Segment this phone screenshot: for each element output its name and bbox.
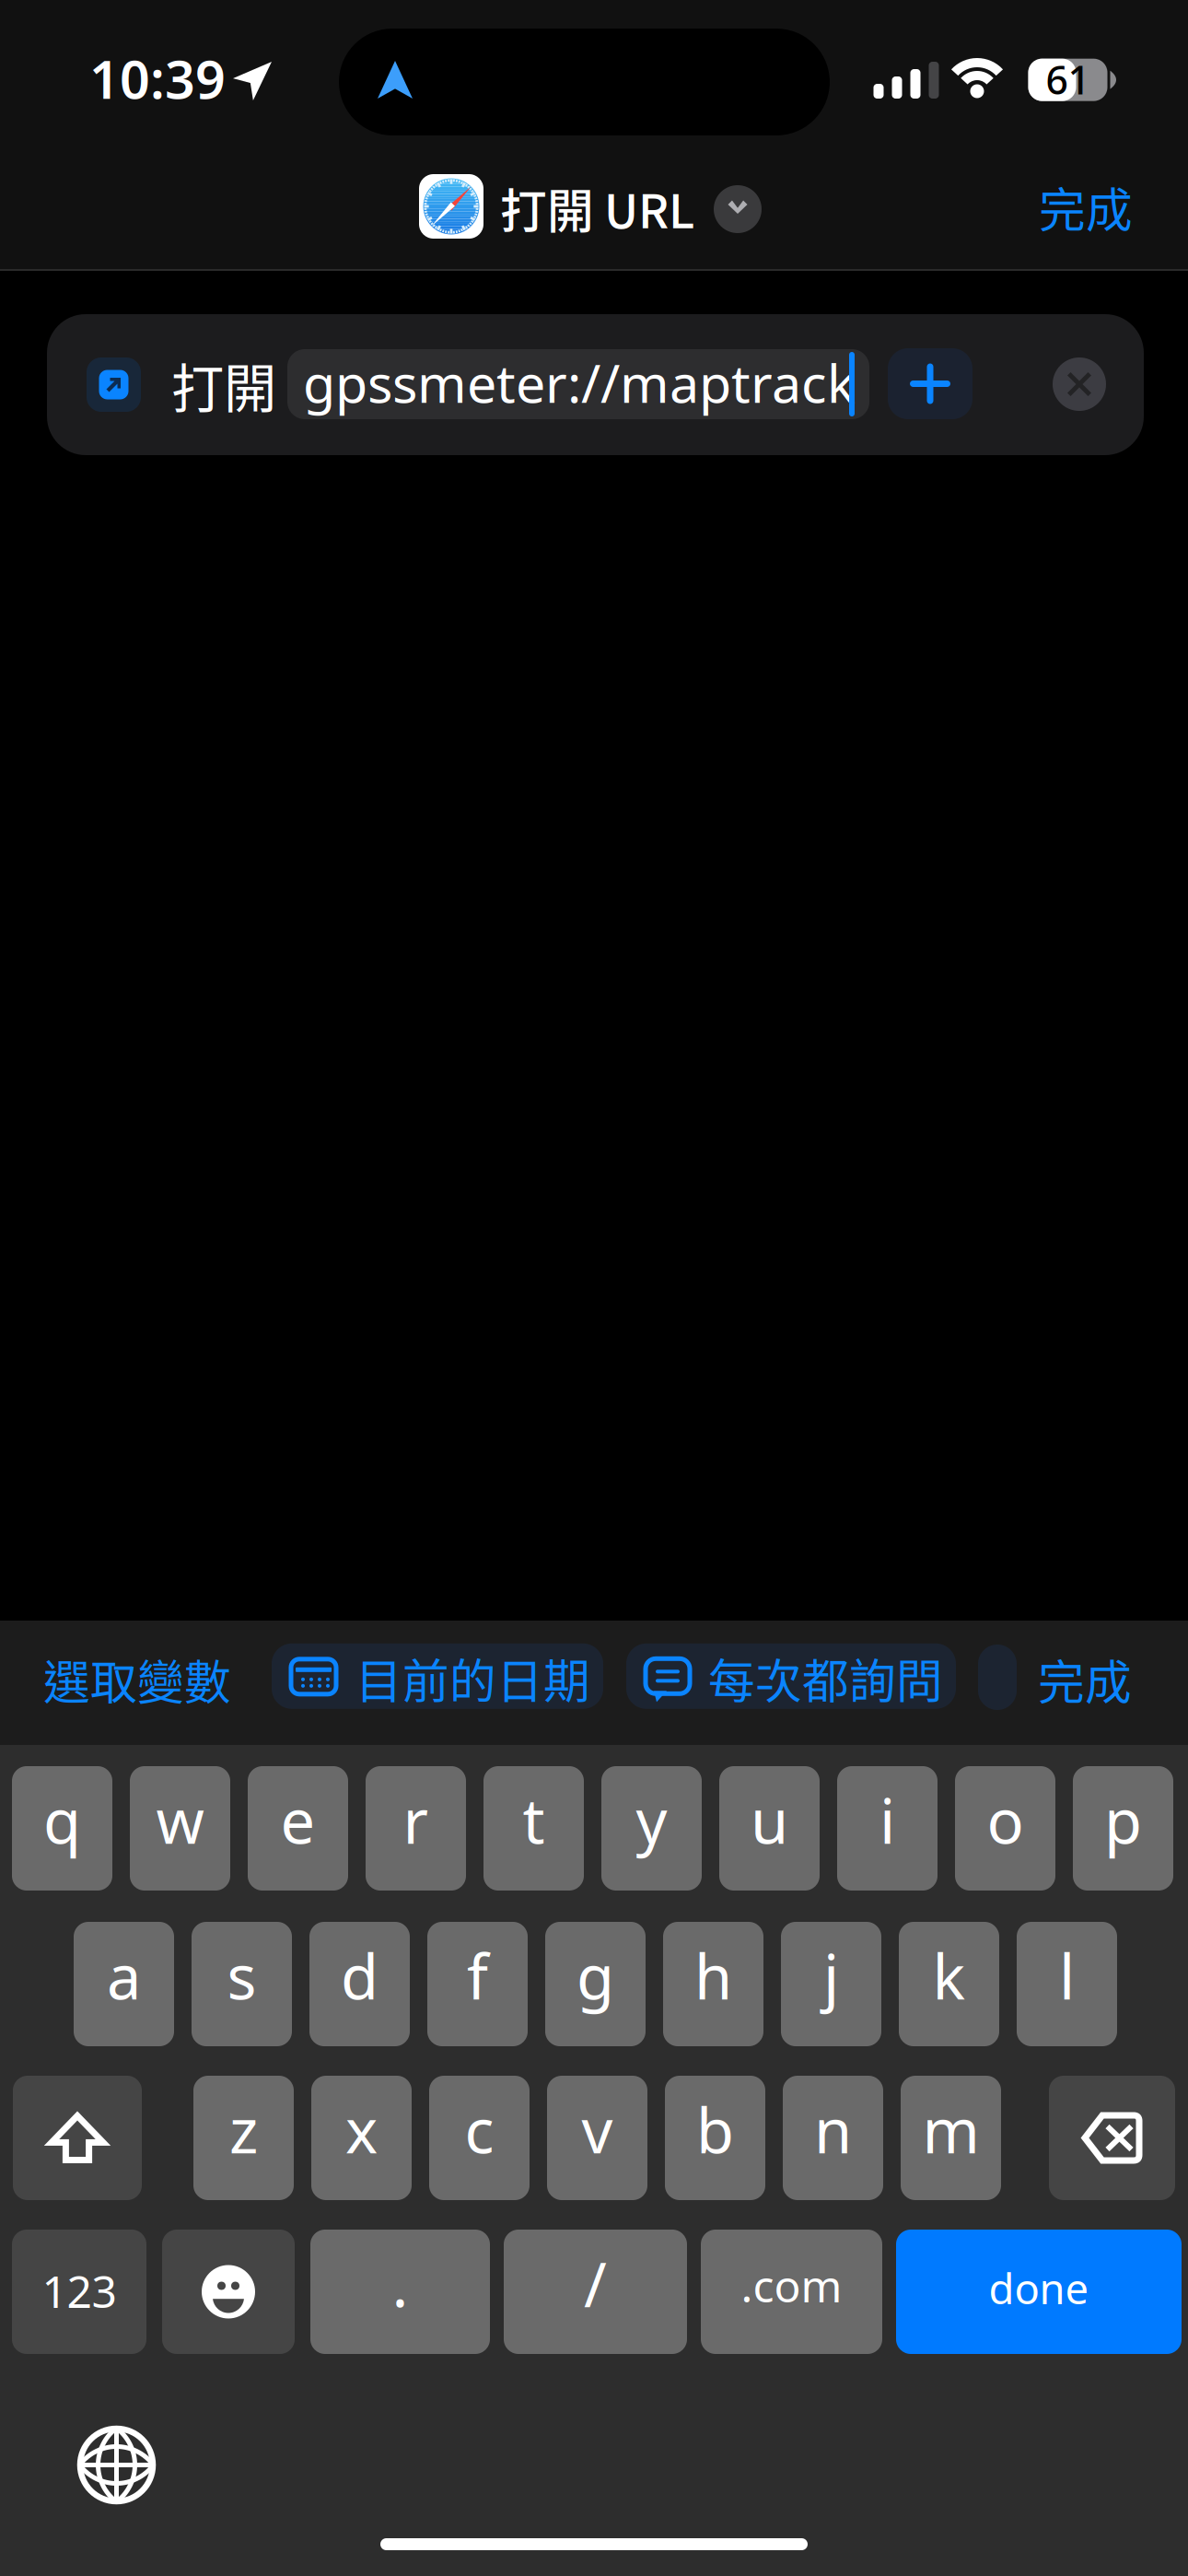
staticText: a	[107, 1935, 141, 2016]
button[interactable]: j	[781, 1922, 881, 2046]
button[interactable]: m	[901, 2076, 1001, 2200]
staticText: k	[932, 1935, 966, 2016]
staticText: y	[636, 1779, 667, 1861]
staticText: m	[922, 2089, 979, 2170]
staticText: b	[696, 2089, 734, 2170]
staticText: d	[341, 1935, 379, 2016]
staticText: q	[43, 1779, 81, 1861]
button[interactable]: h	[663, 1922, 763, 2046]
button[interactable]: Next keyboard	[80, 2429, 153, 2501]
staticText: x	[345, 2089, 378, 2170]
button[interactable]: t	[483, 1766, 584, 1891]
button[interactable]: p	[1073, 1766, 1173, 1891]
staticText: g	[577, 1935, 614, 2016]
staticText: gpssmeter://maptrack	[303, 347, 856, 417]
staticText: f	[467, 1935, 488, 2016]
button[interactable]: c	[429, 2076, 530, 2200]
button[interactable]: r	[366, 1766, 466, 1891]
staticText: 61	[1046, 53, 1090, 105]
button[interactable]: n	[783, 2076, 883, 2200]
button[interactable]: y	[601, 1766, 702, 1891]
button[interactable]: done	[896, 2230, 1182, 2354]
button[interactable]: l	[1017, 1922, 1117, 2046]
button[interactable]: i	[837, 1766, 938, 1891]
button[interactable]: Clear text	[1053, 357, 1106, 411]
button[interactable]: .com	[701, 2230, 882, 2354]
button[interactable]: Shift	[13, 2076, 142, 2200]
button[interactable]: Emoji keyboard	[162, 2230, 295, 2354]
staticText: j	[823, 1935, 839, 2016]
staticText: .com	[741, 2256, 842, 2315]
button[interactable]: f	[427, 1922, 528, 2046]
staticText: .	[392, 2243, 408, 2324]
button[interactable]: 完成	[1021, 1629, 1148, 1730]
staticText: p	[1104, 1779, 1142, 1861]
staticText: t	[523, 1779, 545, 1861]
staticText: 123	[42, 2261, 116, 2320]
button[interactable]: 完成	[1022, 157, 1149, 257]
staticText: w	[156, 1779, 204, 1861]
staticText: z	[229, 2089, 258, 2170]
staticText: n	[814, 2089, 852, 2170]
staticText: s	[227, 1935, 256, 2016]
button[interactable]: Show more	[714, 185, 762, 233]
button[interactable]: z	[193, 2076, 294, 2200]
staticText: i	[879, 1779, 895, 1861]
button[interactable]: q	[12, 1766, 112, 1891]
staticText: 打開 URL	[500, 174, 694, 242]
staticText: h	[694, 1935, 732, 2016]
staticText: l	[1059, 1935, 1075, 2016]
button[interactable]: Delete	[1049, 2076, 1175, 2200]
button[interactable]: d	[309, 1922, 410, 2046]
button[interactable]: 123	[12, 2230, 146, 2354]
button[interactable]: 目前的日期	[272, 1645, 603, 1710]
button[interactable]: o	[955, 1766, 1055, 1891]
staticText: o	[987, 1779, 1024, 1861]
staticText: 完成	[1038, 1645, 1132, 1713]
staticText: 選取變數	[43, 1645, 231, 1713]
staticText: e	[280, 1779, 315, 1861]
button[interactable]: /	[504, 2230, 687, 2354]
button[interactable]: v	[547, 2076, 647, 2200]
staticText: u	[751, 1779, 788, 1861]
button[interactable]: k	[899, 1922, 999, 2046]
staticText: /	[584, 2243, 607, 2324]
button[interactable]: w	[130, 1766, 230, 1891]
staticText: 10:39	[89, 43, 226, 113]
staticText: 完成	[1039, 173, 1133, 241]
staticText: 打開	[171, 346, 276, 423]
staticText: r	[403, 1779, 429, 1861]
staticText: v	[582, 2089, 613, 2170]
staticText: c	[465, 2089, 494, 2170]
staticText: done	[989, 2260, 1089, 2316]
button[interactable]: 每次都詢問	[626, 1645, 956, 1710]
button[interactable]: u	[719, 1766, 820, 1891]
button[interactable]: g	[545, 1922, 646, 2046]
button[interactable]: .	[310, 2230, 490, 2354]
button[interactable]: b	[665, 2076, 765, 2200]
button[interactable]: s	[192, 1922, 292, 2046]
button[interactable]: Add variable	[888, 348, 973, 419]
button[interactable]: 選取變數	[27, 1629, 248, 1730]
button[interactable]: x	[311, 2076, 412, 2200]
button[interactable]: a	[74, 1922, 174, 2046]
button[interactable]: e	[248, 1766, 348, 1891]
staticText: 目前的日期	[355, 1644, 590, 1712]
staticText: 每次都詢問	[708, 1644, 943, 1712]
